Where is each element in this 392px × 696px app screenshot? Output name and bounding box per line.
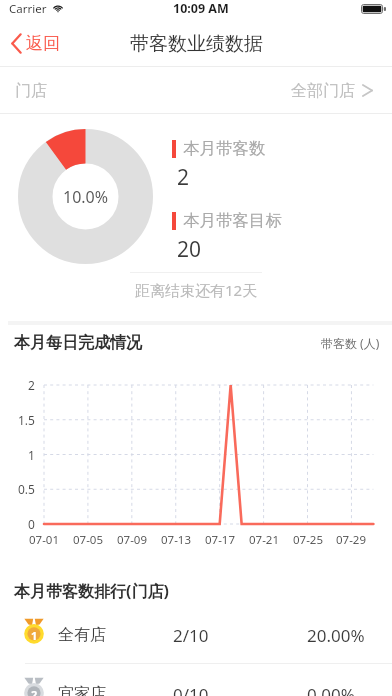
staticText: 20 (177, 235, 202, 264)
staticText: 带客数 (人) (321, 335, 380, 351)
staticText: 2 (177, 163, 190, 192)
staticText: 带客数业绩数据 (130, 32, 263, 56)
staticText: 07-01 (29, 532, 60, 548)
staticText: 10.0% (63, 186, 109, 208)
staticText: 1 (28, 447, 35, 463)
button[interactable]: 返回 (0, 20, 72, 67)
staticText: 距离结束还有12天 (135, 280, 258, 300)
button[interactable]: 2 (0, 667, 392, 696)
staticText: 本月带客数排行(门店) (14, 580, 169, 602)
button[interactable]: 1 (0, 608, 392, 663)
staticText: 07-29 (336, 532, 367, 548)
staticText: 20.00% (307, 624, 365, 647)
staticText: Carrier (9, 1, 47, 17)
staticText: 本月每日完成情况 (14, 333, 142, 353)
staticText: 07-25 (293, 532, 324, 548)
staticText: 门店 (15, 81, 47, 101)
staticText: 0 (28, 516, 35, 532)
staticText: 0.00% (307, 683, 355, 696)
staticText: 本月带客目标 (183, 210, 282, 231)
staticText: 全部门店 (291, 81, 355, 101)
staticText: 宜家店 (58, 684, 106, 696)
staticText: 1.5 (18, 412, 35, 428)
staticText: 07-13 (161, 532, 192, 548)
staticText: 返回 (26, 33, 60, 54)
staticText: 0.5 (18, 481, 35, 497)
staticText: 07-09 (117, 532, 148, 548)
staticText: 2 (28, 377, 35, 393)
staticText: 本月带客数 (183, 138, 266, 159)
staticText: 07-21 (249, 532, 280, 548)
staticText: 2 (31, 687, 38, 696)
staticText: 全有店 (58, 625, 106, 645)
staticText: 07-17 (205, 532, 236, 548)
staticText: 1 (31, 628, 38, 643)
staticText: 10:09 AM (173, 0, 229, 17)
staticText: 07-05 (73, 532, 104, 548)
staticText: 2/10 (173, 624, 209, 647)
staticText: 0/10 (173, 683, 209, 696)
button[interactable]: 门店 (0, 67, 392, 114)
